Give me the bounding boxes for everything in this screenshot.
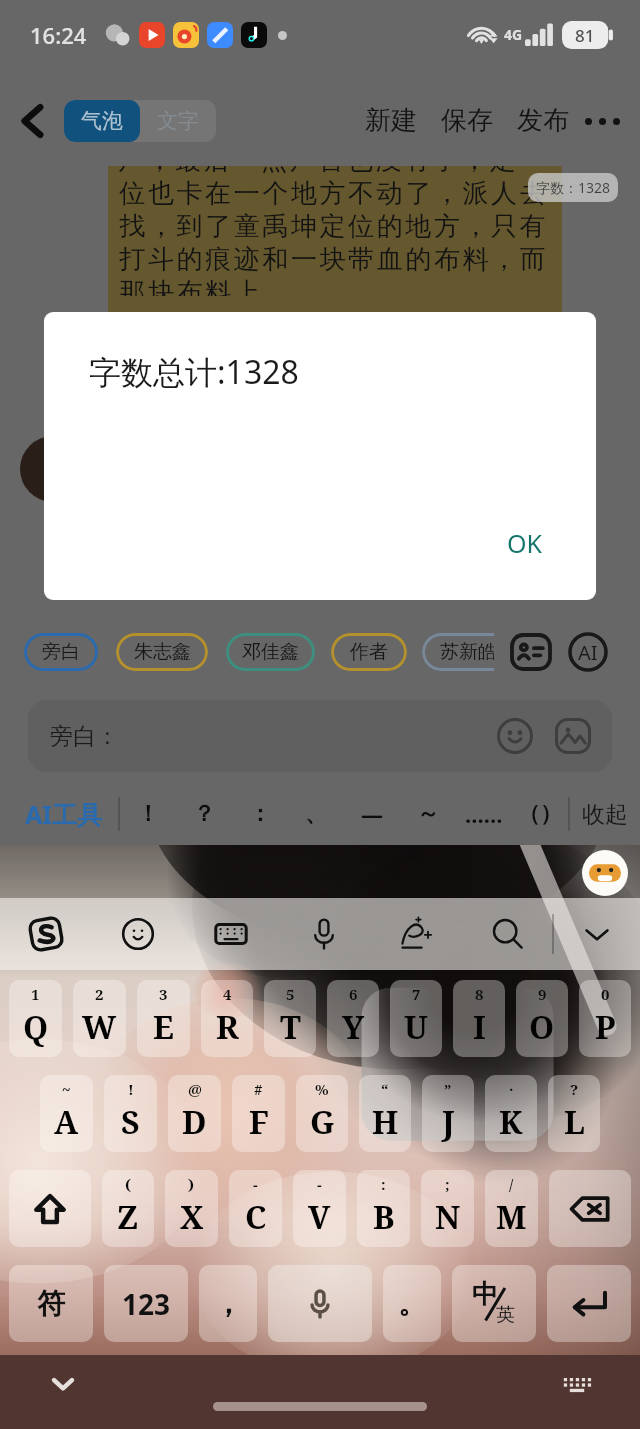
button[interactable]: 发布 (514, 96, 572, 145)
staticText: — (361, 799, 384, 829)
button[interactable]: 作者 (331, 633, 407, 671)
button[interactable]: — (344, 786, 400, 842)
button[interactable]: ～ (400, 786, 456, 842)
button[interactable]: 8 (453, 980, 505, 1057)
staticText: E (153, 1005, 174, 1049)
button[interactable]: ; (421, 1170, 474, 1247)
button[interactable]: 9 (516, 980, 568, 1057)
button[interactable]: Emoji (114, 910, 162, 958)
button[interactable]: 2 (73, 980, 126, 1057)
staticText: 0 (601, 984, 610, 1004)
staticText: 3 (159, 984, 168, 1004)
button[interactable]: 0 (579, 980, 631, 1057)
button[interactable]: Backspace (549, 1170, 631, 1247)
button[interactable]: 文字 (140, 100, 216, 142)
button[interactable]: ” (422, 1075, 474, 1152)
button[interactable]: Enter (547, 1265, 631, 1342)
button[interactable]: - (293, 1170, 346, 1247)
staticText: ~ (62, 1079, 71, 1099)
staticText: % (315, 1079, 329, 1099)
button[interactable]: 符 (9, 1265, 93, 1342)
staticText: T (280, 1005, 301, 1049)
button[interactable]: ~ (40, 1075, 93, 1152)
button[interactable]: Characters (509, 630, 553, 674)
button[interactable]: 苏新皓 (422, 633, 494, 671)
staticText: ) (188, 1174, 195, 1194)
staticText: D (182, 1100, 207, 1144)
button[interactable]: ) (165, 1170, 218, 1247)
button[interactable]: 邓佳鑫 (226, 633, 315, 671)
button[interactable]: OK (487, 512, 563, 574)
button[interactable]: 新建 (362, 96, 420, 145)
staticText: ( (125, 1174, 132, 1194)
button[interactable]: ， (199, 1265, 257, 1342)
staticText: ; (445, 1174, 450, 1194)
button[interactable]: Voice input (268, 1265, 372, 1342)
button[interactable]: Switch keyboard (556, 1363, 598, 1405)
staticText: 8 (475, 984, 484, 1004)
button[interactable]: ? (548, 1075, 600, 1152)
button[interactable]: Emoji (495, 716, 535, 756)
button[interactable]: 旁白 (24, 633, 98, 671)
button[interactable]: （） (512, 786, 568, 842)
button[interactable]: % (296, 1075, 348, 1152)
button[interactable]: ？ (176, 786, 232, 842)
button[interactable]: # (232, 1075, 285, 1152)
button[interactable]: ! (104, 1075, 157, 1152)
button[interactable]: Shift (9, 1170, 91, 1247)
staticText: L (564, 1100, 585, 1144)
button[interactable]: 、 (288, 786, 344, 842)
button[interactable]: / (485, 1170, 538, 1247)
button[interactable]: ： (232, 786, 288, 842)
button[interactable]: Assistant (582, 850, 628, 896)
staticText: 苏新皓 (440, 640, 494, 664)
button[interactable]: Hide keyboard (42, 1363, 84, 1405)
staticText: OK (507, 526, 543, 560)
button[interactable]: “ (359, 1075, 411, 1152)
button[interactable]: 旁白： (28, 700, 612, 772)
button[interactable]: 。 (383, 1265, 441, 1342)
button[interactable]: 4 (201, 980, 253, 1057)
staticText: C (245, 1195, 267, 1239)
button[interactable]: 保存 (438, 96, 496, 145)
button[interactable]: Keyboard layout (207, 910, 255, 958)
button[interactable]: 朱志鑫 (116, 633, 208, 671)
button[interactable]: 123 (104, 1265, 188, 1342)
staticText: 邓佳鑫 (242, 640, 299, 664)
staticText: ? (570, 1079, 579, 1099)
button[interactable]: 7 (390, 980, 442, 1057)
button[interactable]: @ (168, 1075, 221, 1152)
staticText: Q (23, 1005, 49, 1049)
button[interactable]: : (357, 1170, 410, 1247)
button[interactable]: AI assistant (568, 632, 608, 672)
button[interactable]: 1 (9, 980, 62, 1057)
staticText: 5 (286, 984, 295, 1004)
button[interactable]: 中 (452, 1265, 536, 1342)
button[interactable]: - (229, 1170, 282, 1247)
button[interactable]: · (485, 1075, 537, 1152)
staticText: 81 (575, 24, 595, 47)
button[interactable]: Back (8, 96, 58, 146)
button[interactable]: Sogou input (22, 910, 70, 958)
button[interactable]: Search (484, 910, 532, 958)
staticText: J (442, 1100, 455, 1144)
staticText: 、 (305, 800, 327, 828)
button[interactable]: ！ (120, 786, 176, 842)
button[interactable]: AI工具 (22, 789, 106, 839)
button[interactable]: 5 (264, 980, 316, 1057)
button[interactable]: 气泡 (64, 100, 140, 142)
button[interactable]: More options (578, 97, 626, 145)
button[interactable]: Handwriting (392, 910, 440, 958)
button[interactable]: Voice input (300, 910, 348, 958)
button[interactable]: Collapse keyboard (573, 910, 621, 958)
button[interactable]: ( (102, 1170, 154, 1247)
staticText: V (308, 1195, 331, 1239)
button[interactable]: 收起 (570, 786, 640, 842)
staticText: K (499, 1100, 523, 1144)
staticText: ! (128, 1079, 134, 1099)
button[interactable]: …… (456, 786, 512, 842)
staticText: 找，到了童禹坤定位的地方，只有 (118, 210, 547, 243)
button[interactable]: 6 (327, 980, 379, 1057)
button[interactable]: 3 (137, 980, 190, 1057)
button[interactable]: Insert image (553, 716, 593, 756)
